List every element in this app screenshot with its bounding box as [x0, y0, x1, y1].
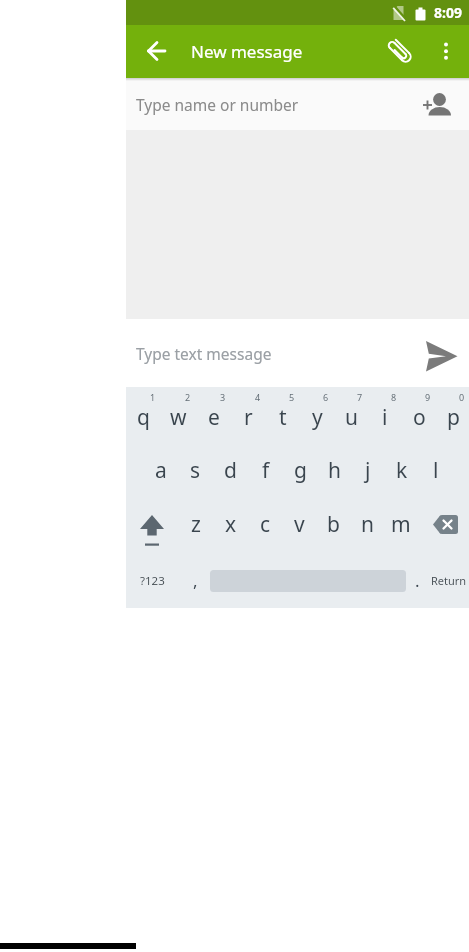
staticText: 5: [289, 391, 295, 403]
staticText: c: [260, 510, 271, 539]
button[interactable]: Return: [427, 552, 469, 609]
staticText: z: [191, 510, 201, 539]
button[interactable]: j: [351, 443, 385, 497]
button[interactable]: 0: [436, 387, 469, 442]
staticText: y: [312, 403, 323, 432]
button[interactable]: s: [178, 443, 213, 497]
staticText: 8:09: [434, 3, 462, 22]
staticText: New message: [191, 40, 303, 63]
button[interactable]: ,: [178, 552, 212, 609]
staticText: q: [137, 403, 150, 432]
staticText: n: [361, 510, 374, 539]
button[interactable]: [138, 32, 176, 70]
button[interactable]: [126, 497, 178, 552]
button[interactable]: c: [248, 497, 282, 552]
staticText: 1: [150, 391, 156, 403]
staticText: 7: [357, 391, 363, 403]
button[interactable]: x: [213, 497, 248, 552]
staticText: s: [190, 456, 201, 485]
button[interactable]: 4: [231, 387, 266, 442]
button[interactable]: a: [143, 443, 178, 497]
button[interactable]: n: [350, 497, 384, 552]
staticText: t: [279, 403, 287, 432]
staticText: p: [447, 403, 460, 432]
staticText: ?123: [140, 573, 165, 589]
button[interactable]: m: [384, 497, 418, 552]
staticText: g: [294, 456, 307, 485]
staticText: d: [224, 456, 237, 485]
button[interactable]: f: [248, 443, 283, 497]
staticText: x: [225, 510, 237, 539]
button[interactable]: b: [316, 497, 350, 552]
staticText: r: [244, 403, 253, 432]
staticText: e: [208, 403, 220, 432]
button[interactable]: [381, 32, 419, 70]
staticText: ,: [193, 569, 198, 592]
staticText: v: [294, 510, 305, 539]
staticText: Type text message: [136, 343, 272, 364]
button[interactable]: 9: [402, 387, 436, 442]
staticText: k: [396, 456, 408, 485]
button[interactable]: d: [213, 443, 248, 497]
button[interactable]: [422, 337, 462, 376]
staticText: m: [391, 510, 411, 539]
staticText: u: [345, 403, 358, 432]
staticText: i: [382, 403, 388, 432]
button[interactable]: [418, 497, 469, 552]
staticText: j: [365, 456, 371, 485]
staticText: a: [155, 456, 167, 485]
staticText: h: [328, 456, 341, 485]
staticText: 4: [255, 391, 261, 403]
staticText: o: [413, 403, 426, 432]
staticText: w: [170, 403, 187, 432]
staticText: l: [433, 456, 439, 485]
button[interactable]: 6: [300, 387, 334, 442]
staticText: 2: [185, 391, 191, 403]
staticText: 6: [323, 391, 329, 403]
staticText: 8: [391, 391, 397, 403]
staticText: 0: [459, 391, 465, 403]
button[interactable]: g: [283, 443, 317, 497]
staticText: .: [415, 569, 420, 592]
button[interactable]: 5: [266, 387, 300, 442]
staticText: 9: [425, 391, 431, 403]
staticText: b: [327, 510, 340, 539]
button[interactable]: [431, 32, 461, 70]
staticText: 3: [220, 391, 226, 403]
button[interactable]: h: [317, 443, 351, 497]
staticText: Return: [431, 573, 467, 588]
button[interactable]: .: [400, 552, 434, 609]
button[interactable]: [420, 91, 454, 121]
button[interactable]: 1: [126, 387, 161, 442]
button[interactable]: v: [282, 497, 316, 552]
button[interactable]: 2: [161, 387, 196, 442]
staticText: f: [262, 456, 270, 485]
staticText: Type name or number: [136, 94, 299, 115]
button[interactable]: z: [178, 497, 213, 552]
button[interactable]: l: [419, 443, 453, 497]
button[interactable]: k: [385, 443, 419, 497]
button[interactable]: ?123: [126, 552, 178, 609]
button[interactable]: 7: [334, 387, 368, 442]
button[interactable]: 3: [196, 387, 231, 442]
button[interactable]: 8: [368, 387, 402, 442]
